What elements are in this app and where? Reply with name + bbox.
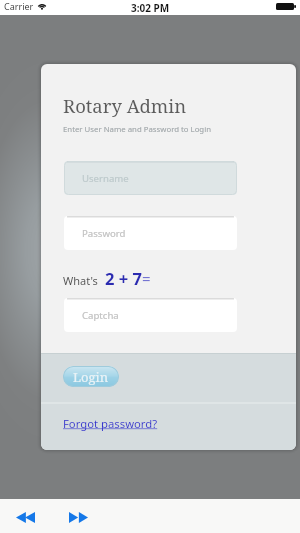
staticText: =: [142, 268, 151, 288]
staticText: 3:02 PM: [131, 1, 170, 15]
button[interactable]: Login: [63, 366, 119, 387]
staticText: Enter User Name and Password to Login: [63, 124, 211, 135]
staticText: 2 + 7: [105, 267, 142, 289]
button[interactable]: Username: [64, 161, 237, 195]
staticText: Rotary Admin: [63, 93, 187, 118]
staticText: Carrier: [4, 0, 34, 12]
button[interactable]: Forgot password?: [63, 416, 158, 431]
button[interactable]: Forward: [62, 501, 94, 533]
staticText: What's: [63, 273, 98, 288]
staticText: Captcha: [82, 309, 119, 322]
staticText: Login: [73, 368, 109, 386]
staticText: Forgot password?: [63, 416, 158, 431]
button[interactable]: Captcha: [64, 298, 237, 332]
button[interactable]: Back: [9, 501, 41, 533]
staticText: Password: [82, 227, 126, 240]
staticText: Username: [82, 172, 129, 185]
button[interactable]: Password: [64, 216, 237, 250]
